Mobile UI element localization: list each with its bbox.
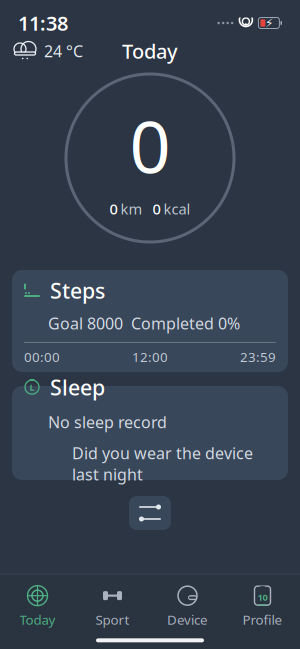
staticText: Profile [242, 611, 282, 628]
staticText: 0 [109, 199, 117, 219]
staticText: Completed 0% [131, 313, 240, 334]
staticText: 12:00 [132, 348, 168, 366]
staticText: 00:00 [24, 348, 60, 366]
staticText: 0 [152, 199, 160, 219]
button[interactable]: Steps [12, 270, 288, 372]
staticText: Today [19, 611, 55, 628]
staticText: Goal 8000 [48, 313, 123, 334]
staticText: kcal [163, 199, 190, 219]
staticText: km [120, 199, 142, 219]
staticText: Steps [50, 276, 105, 305]
staticText: Sleep [50, 373, 105, 401]
button[interactable]: Today [0, 583, 75, 630]
staticText: ⚡︎ [265, 16, 273, 30]
button[interactable]: Adjust cards [129, 496, 171, 530]
staticText: Sport [95, 611, 129, 628]
staticText: 24 °C [44, 40, 83, 62]
staticText: 0 [129, 97, 170, 193]
button[interactable]: Sport [75, 583, 150, 630]
staticText: Device [167, 611, 208, 628]
staticText: 10 [257, 591, 267, 603]
staticText: 11:38 [18, 10, 68, 36]
staticText: Today [122, 38, 178, 64]
staticText: L [29, 381, 34, 393]
button[interactable]: Device [150, 583, 225, 630]
button[interactable]: L [12, 386, 288, 480]
button[interactable]: 10 [225, 583, 300, 630]
staticText: No sleep record [48, 411, 167, 432]
staticText: Did you wear the device last night [72, 442, 253, 485]
staticText: 23:59 [240, 348, 276, 366]
